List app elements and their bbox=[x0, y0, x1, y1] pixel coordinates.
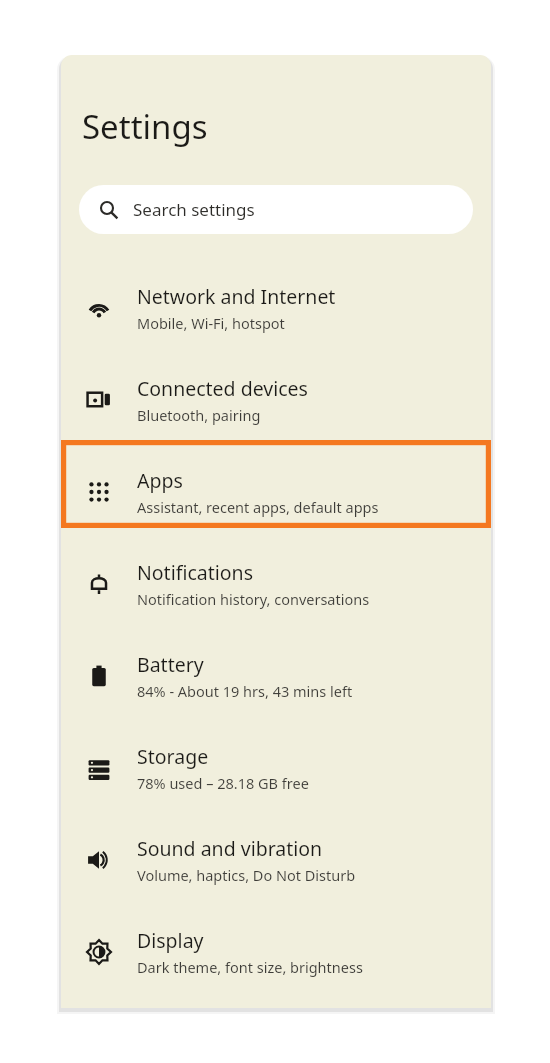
button[interactable]: Apps bbox=[61, 446, 491, 538]
other: Sound and vibration bbox=[86, 847, 112, 873]
button[interactable]: Network and Internet bbox=[61, 262, 491, 354]
button[interactable]: Display bbox=[61, 906, 491, 998]
button[interactable]: Storage bbox=[61, 722, 491, 814]
staticText: Search settings bbox=[133, 198, 255, 221]
staticText: Display bbox=[137, 927, 204, 954]
other: Display bbox=[86, 939, 112, 965]
staticText: Apps bbox=[137, 467, 183, 494]
staticText: Network and Internet bbox=[137, 283, 336, 310]
staticText: Settings bbox=[82, 104, 208, 149]
other: Apps bbox=[86, 479, 112, 505]
staticText: 78% used – 28.18 GB free bbox=[137, 773, 309, 793]
staticText: Battery bbox=[137, 651, 204, 678]
staticText: Notifications bbox=[137, 559, 253, 586]
other: Connected devices bbox=[86, 387, 112, 413]
other: Storage bbox=[86, 755, 112, 781]
staticText: 84% - About 19 hrs, 43 mins left bbox=[137, 681, 353, 701]
staticText: Notification history, conversations bbox=[137, 589, 370, 609]
button[interactable]: Connected devices bbox=[61, 354, 491, 446]
staticText: Connected devices bbox=[137, 375, 308, 402]
other: Battery bbox=[86, 663, 112, 689]
other: Notifications bbox=[86, 571, 112, 597]
other: Network and Internet bbox=[86, 295, 112, 321]
button[interactable]: Notifications bbox=[61, 538, 491, 630]
staticText: Dark theme, font size, brightness bbox=[137, 957, 363, 977]
staticText: Storage bbox=[137, 743, 209, 770]
staticText: Volume, haptics, Do Not Disturb bbox=[137, 865, 356, 885]
staticText: Mobile, Wi-Fi, hotspot bbox=[137, 313, 285, 333]
button[interactable]: Battery bbox=[61, 630, 491, 722]
staticText: Sound and vibration bbox=[137, 835, 323, 862]
staticText: Bluetooth, pairing bbox=[137, 405, 261, 425]
button[interactable]: Sound and vibration bbox=[61, 814, 491, 906]
staticText: Assistant, recent apps, default apps bbox=[137, 497, 379, 517]
button[interactable]: Search settings bbox=[79, 185, 473, 234]
